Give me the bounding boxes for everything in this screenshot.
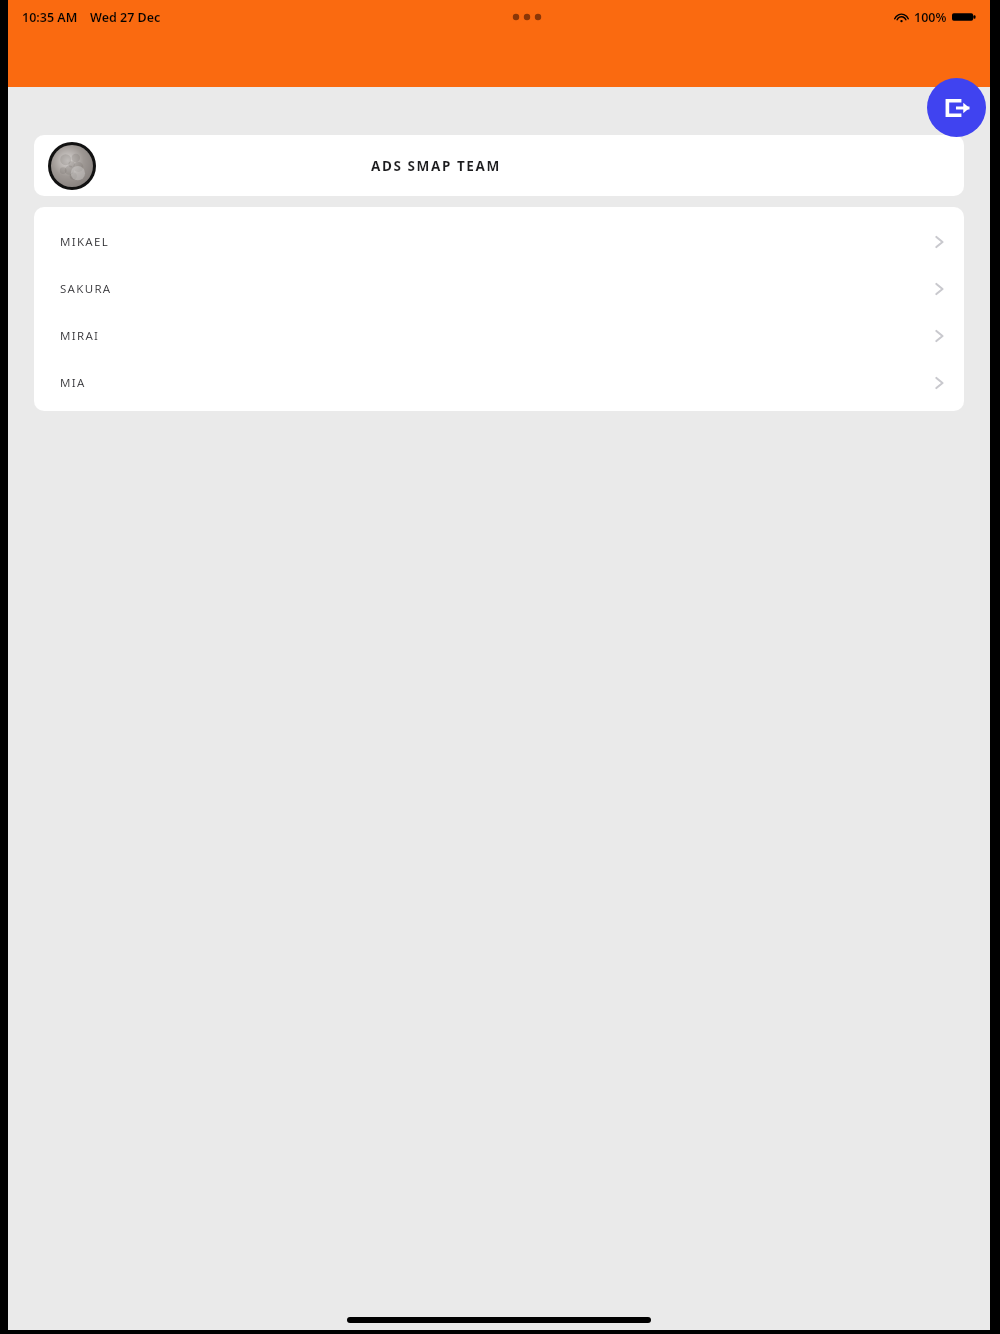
button[interactable]: MIRAI: [34, 312, 964, 359]
button[interactable]: SAKURA: [34, 265, 964, 312]
staticText: Wed 27 Dec: [90, 9, 161, 26]
staticText: 100%: [914, 9, 947, 26]
button[interactable]: Log out: [927, 78, 986, 137]
staticText: MIKAEL: [60, 234, 110, 250]
staticText: ADS SMAP TEAM: [371, 157, 501, 175]
button[interactable]: MIA: [34, 359, 964, 406]
staticText: 10:35 AM: [22, 9, 78, 26]
staticText: SAKURA: [60, 281, 112, 297]
staticText: MIA: [60, 375, 86, 391]
button[interactable]: ADS SMAP TEAM: [34, 135, 964, 196]
staticText: MIRAI: [60, 328, 100, 344]
button[interactable]: MIKAEL: [34, 218, 964, 265]
